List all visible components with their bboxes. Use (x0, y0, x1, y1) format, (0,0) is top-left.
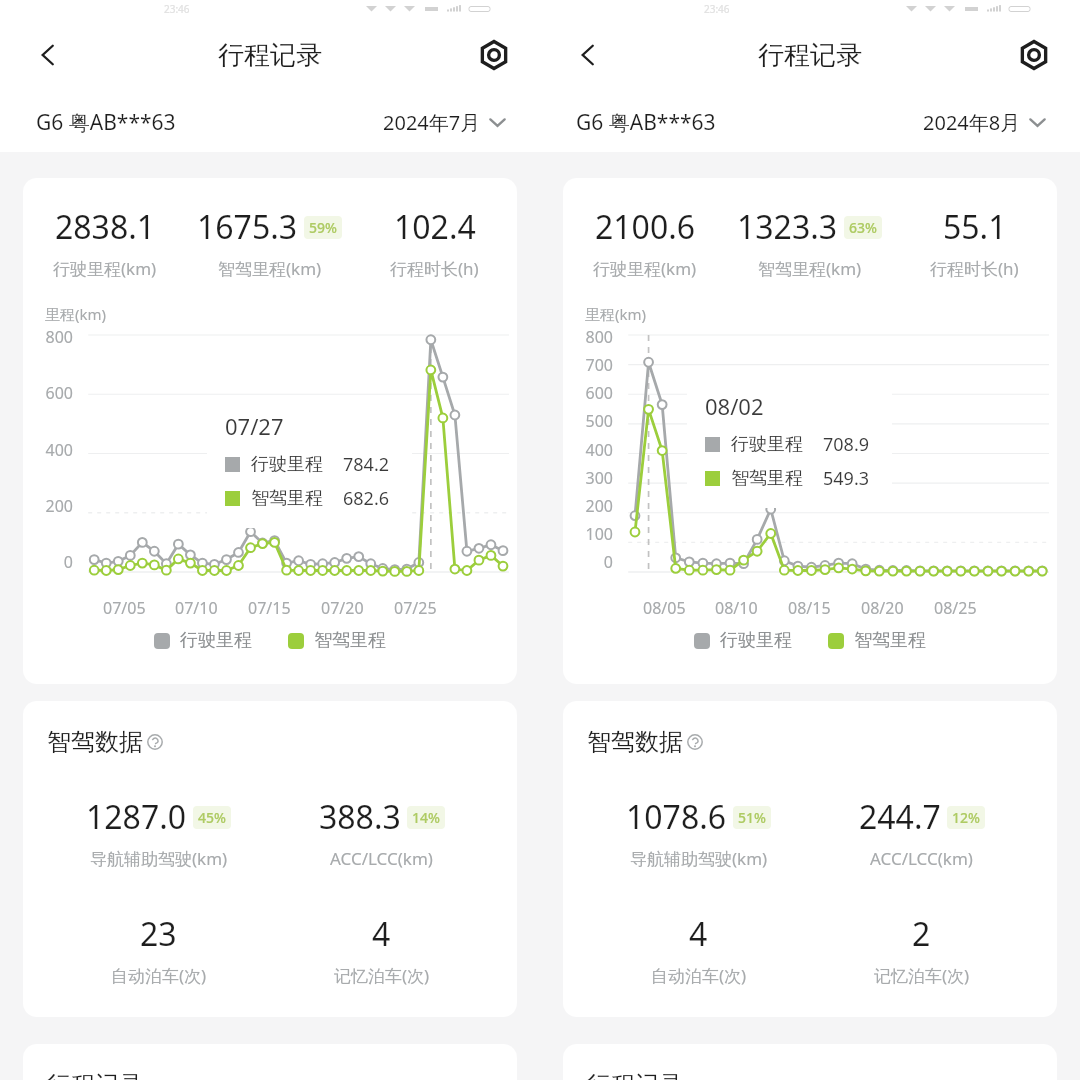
staticText: 0 (563, 551, 613, 573)
staticText: 行程记录 (758, 39, 862, 72)
button[interactable]: 行程记录 (563, 1044, 1057, 1080)
staticText: 51% (738, 808, 766, 827)
button[interactable]: 行程记录 (23, 1044, 517, 1080)
button[interactable]: Settings (470, 31, 518, 79)
staticText: 800 (23, 326, 73, 348)
staticText: 智驾里程(km) (218, 257, 322, 280)
staticText: 200 (23, 495, 73, 517)
staticText: 400 (563, 439, 613, 461)
staticText: 45% (198, 808, 226, 827)
staticText: 行驶里程 (731, 433, 803, 456)
staticText: 07/15 (248, 597, 291, 619)
staticText: G6 粤AB***63 (576, 108, 716, 137)
staticText: 记忆泊车(次) (874, 964, 970, 987)
staticText: 08/10 (715, 597, 758, 619)
staticText: 14% (412, 808, 440, 827)
button[interactable]: Back (24, 31, 72, 79)
staticText: 07/05 (103, 597, 146, 619)
staticText: 行驶里程 (251, 453, 323, 476)
staticText: 2 (912, 912, 931, 956)
staticText: 708.9 (823, 432, 870, 457)
staticText: 08/15 (788, 597, 831, 619)
staticText: 500 (563, 410, 613, 432)
staticText: 07/25 (394, 597, 437, 619)
staticText: 行程记录 (47, 1070, 143, 1080)
staticText: 4 (372, 912, 391, 956)
staticText: 682.6 (343, 486, 390, 511)
staticText: 行程记录 (218, 39, 322, 72)
staticText: 400 (23, 439, 73, 461)
button[interactable]: Back (564, 31, 612, 79)
staticText: 102.4 (394, 205, 476, 249)
staticText: 2024年7月 (383, 109, 481, 136)
staticText: G6 粤AB***63 (36, 108, 176, 137)
staticText: 记忆泊车(次) (334, 964, 430, 987)
staticText: 行驶里程 (180, 629, 252, 652)
button[interactable]: 智驾数据 info (47, 727, 163, 757)
button[interactable]: Settings (1010, 31, 1058, 79)
staticText: 1675.3 (197, 205, 298, 249)
staticText: 0 (23, 551, 73, 573)
staticText: 智驾数据 (47, 727, 143, 757)
staticText: 4 (689, 912, 708, 956)
staticText: 200 (563, 495, 613, 517)
staticText: 2024年8月 (923, 109, 1021, 136)
staticText: 244.7 (859, 795, 941, 839)
staticText: 自动泊车(次) (651, 964, 747, 987)
staticText: 行驶里程 (720, 629, 792, 652)
staticText: 里程(km) (585, 304, 647, 324)
button[interactable]: 2024年8月 (923, 109, 1046, 136)
staticText: 导航辅助驾驶(km) (90, 847, 228, 870)
staticText: 1287.0 (86, 795, 187, 839)
staticText: 12% (952, 808, 980, 827)
staticText: 08/25 (934, 597, 977, 619)
staticText: 07/10 (175, 597, 218, 619)
staticText: 784.2 (343, 452, 390, 477)
staticText: 08/20 (861, 597, 904, 619)
staticText: 导航辅助驾驶(km) (630, 847, 768, 870)
staticText: 300 (563, 467, 613, 489)
staticText: 388.3 (319, 795, 401, 839)
staticText: 智驾里程 (314, 629, 386, 652)
staticText: ACC/LCC(km) (330, 847, 433, 870)
staticText: 2838.1 (55, 205, 156, 249)
staticText: 55.1 (943, 205, 1007, 249)
staticText: 行程时长(h) (930, 257, 1019, 280)
staticText: 23:46 (164, 2, 190, 16)
staticText: 1323.3 (737, 205, 838, 249)
staticText: 2100.6 (595, 205, 696, 249)
staticText: 800 (563, 326, 613, 348)
staticText: 63% (849, 218, 877, 237)
staticText: 23:46 (704, 2, 730, 16)
button[interactable]: 2024年7月 (383, 109, 506, 136)
staticText: 100 (563, 523, 613, 545)
staticText: 行驶里程(km) (593, 257, 697, 280)
staticText: 自动泊车(次) (111, 964, 207, 987)
staticText: 行程时长(h) (390, 257, 479, 280)
staticText: 08/05 (643, 597, 686, 619)
staticText: 1078.6 (626, 795, 727, 839)
staticText: 行程记录 (587, 1070, 683, 1080)
staticText: 59% (309, 218, 337, 237)
staticText: 行驶里程(km) (53, 257, 157, 280)
staticText: 700 (563, 354, 613, 376)
button[interactable]: 智驾数据 info (587, 727, 703, 757)
staticText: 08/02 (705, 391, 764, 421)
staticText: 600 (23, 382, 73, 404)
staticText: 07/20 (321, 597, 364, 619)
staticText: 智驾里程 (731, 467, 803, 490)
staticText: 23 (140, 912, 177, 956)
staticText: 智驾数据 (587, 727, 683, 757)
staticText: 07/27 (225, 411, 284, 441)
staticText: 里程(km) (45, 304, 107, 324)
staticText: 智驾里程(km) (758, 257, 862, 280)
staticText: 智驾里程 (251, 487, 323, 510)
staticText: 549.3 (823, 466, 870, 491)
staticText: 600 (563, 382, 613, 404)
staticText: ACC/LCC(km) (870, 847, 973, 870)
staticText: 智驾里程 (854, 629, 926, 652)
